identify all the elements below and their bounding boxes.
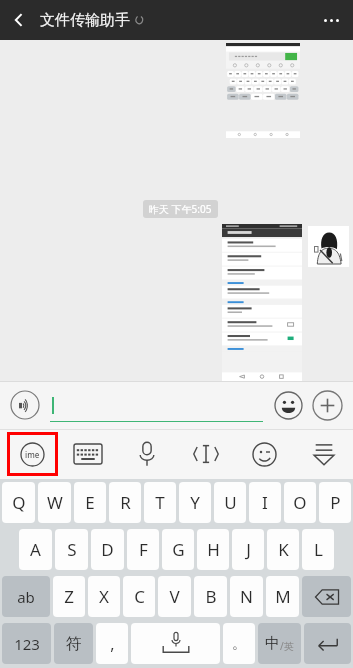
button[interactable]: ab — [2, 576, 50, 617]
button[interactable]: S — [55, 529, 88, 570]
button[interactable]: 123 — [2, 623, 51, 664]
button[interactable]: Z — [53, 576, 85, 617]
staticText: H — [207, 538, 220, 561]
button[interactable]: M — [266, 576, 299, 617]
button[interactable]: Input method — [0, 429, 58, 479]
button[interactable]: Space — [131, 623, 220, 664]
button[interactable]: Voice — [117, 429, 176, 479]
button[interactable]: K — [267, 529, 299, 570]
staticText: 中 — [265, 634, 280, 653]
button[interactable]: J — [232, 529, 264, 570]
button[interactable]: 中 — [258, 623, 301, 664]
staticText: 123 — [14, 634, 40, 654]
button[interactable]: D — [91, 529, 124, 570]
staticText: V — [169, 585, 180, 608]
button[interactable]: N — [230, 576, 263, 617]
staticText: 符 — [66, 634, 82, 654]
staticText: R — [120, 491, 131, 514]
button[interactable]: More functions — [309, 387, 345, 423]
button[interactable] — [50, 388, 263, 422]
staticText: I — [262, 491, 268, 514]
staticText: L — [314, 538, 323, 561]
button[interactable]: W — [38, 482, 71, 523]
button[interactable]: P — [319, 482, 351, 523]
button[interactable]: B — [194, 576, 227, 617]
button[interactable]: Enter — [304, 623, 351, 664]
button[interactable]: Q — [2, 482, 35, 523]
staticText: D — [101, 538, 114, 561]
button[interactable]: C — [123, 576, 155, 617]
button[interactable]: U — [214, 482, 246, 523]
staticText: 。 — [232, 635, 246, 653]
button[interactable]: H — [197, 529, 229, 570]
staticText: C — [134, 585, 145, 608]
staticText: /英 — [280, 639, 294, 653]
button[interactable]: R — [109, 482, 141, 523]
button[interactable]: Text cursor — [176, 429, 235, 479]
button[interactable]: Y — [179, 482, 211, 523]
button[interactable]: Backspace — [302, 576, 351, 617]
button[interactable]: More options — [309, 0, 353, 40]
button[interactable]: , — [96, 623, 128, 664]
staticText: A — [30, 538, 41, 561]
staticText: T — [155, 491, 165, 514]
staticText: , — [110, 633, 115, 655]
staticText: U — [224, 491, 237, 514]
button[interactable]: Back — [0, 1, 38, 39]
staticText: B — [205, 585, 217, 608]
staticText: E — [85, 491, 95, 514]
staticText: 文件传输助手 — [40, 11, 130, 30]
button[interactable]: V — [158, 576, 191, 617]
button[interactable]: 。 — [223, 623, 255, 664]
staticText: ab — [17, 587, 35, 607]
button[interactable]: Voice input — [8, 388, 42, 422]
staticText: N — [240, 585, 253, 608]
button[interactable]: Emoji — [271, 388, 305, 422]
button[interactable]: F — [127, 529, 159, 570]
staticText: X — [99, 585, 109, 608]
button[interactable]: T — [144, 482, 176, 523]
staticText: K — [278, 538, 289, 561]
staticText: Q — [12, 491, 26, 514]
staticText: Y — [190, 491, 200, 514]
staticText: 昨天 下午5:05 — [149, 202, 212, 216]
staticText: ime — [25, 449, 40, 460]
button[interactable]: E — [74, 482, 106, 523]
staticText: F — [139, 538, 148, 561]
button[interactable]: O — [284, 482, 316, 523]
button[interactable]: Avatar — [308, 226, 349, 267]
button[interactable]: Keyboard layout — [58, 429, 117, 479]
button[interactable]: A — [19, 529, 52, 570]
button[interactable]: Emoji — [235, 429, 294, 479]
staticText: S — [67, 538, 77, 561]
button[interactable]: Image message — [226, 43, 300, 138]
staticText: M — [275, 585, 291, 608]
staticText: W — [47, 491, 63, 514]
button[interactable]: I — [249, 482, 281, 523]
button[interactable]: G — [162, 529, 194, 570]
staticText: J — [246, 538, 251, 561]
staticText: G — [172, 538, 185, 561]
staticText: P — [330, 491, 341, 514]
staticText: Z — [64, 585, 74, 608]
staticText: O — [293, 491, 307, 514]
button[interactable]: L — [302, 529, 334, 570]
button[interactable]: X — [88, 576, 120, 617]
button[interactable]: Hide keyboard — [294, 429, 353, 479]
button[interactable]: Image message — [222, 224, 302, 381]
button[interactable]: 符 — [54, 623, 93, 664]
